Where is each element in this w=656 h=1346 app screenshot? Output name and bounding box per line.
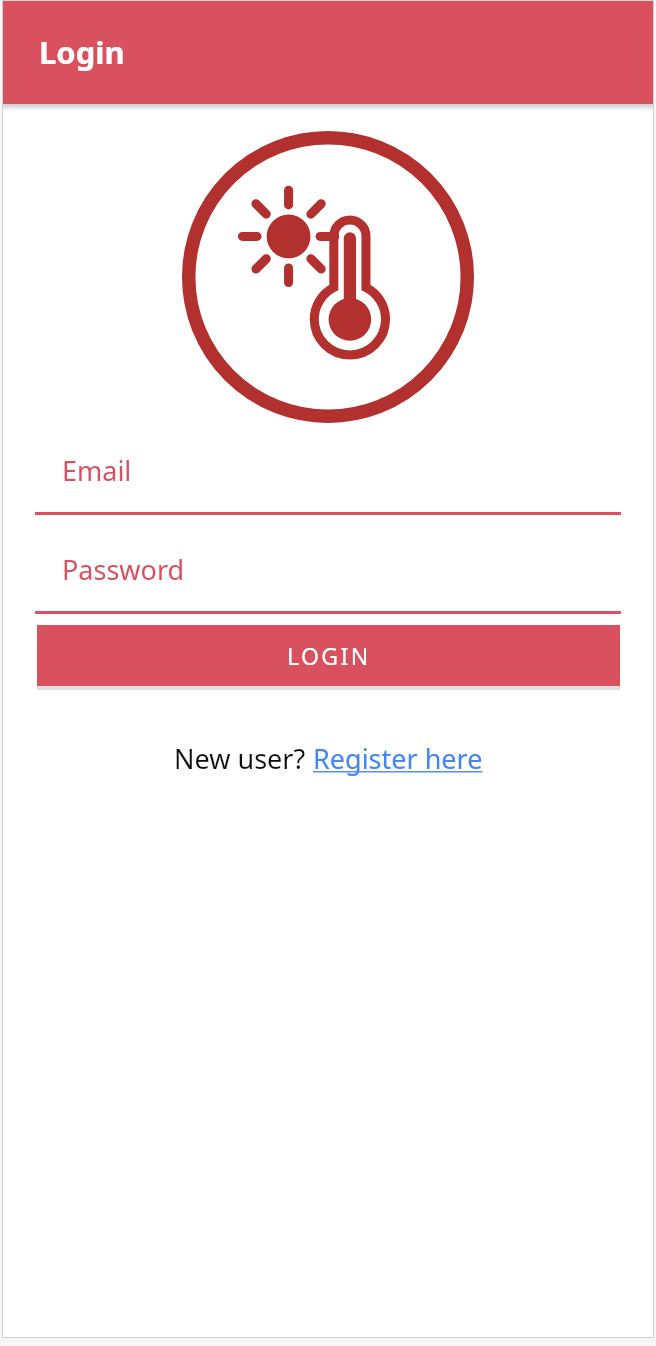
other: Weather app logo (182, 131, 474, 423)
staticText: Password (62, 551, 185, 588)
staticText: Login (39, 31, 125, 73)
button[interactable]: LOGIN (37, 625, 620, 686)
staticText: Email (62, 452, 132, 489)
button[interactable]: Password (35, 541, 621, 614)
button[interactable]: Register here (313, 740, 483, 777)
button[interactable]: Email (35, 442, 621, 515)
staticText: LOGIN (287, 640, 371, 671)
staticText: Register here (313, 740, 483, 777)
staticText: New user? (174, 740, 313, 777)
